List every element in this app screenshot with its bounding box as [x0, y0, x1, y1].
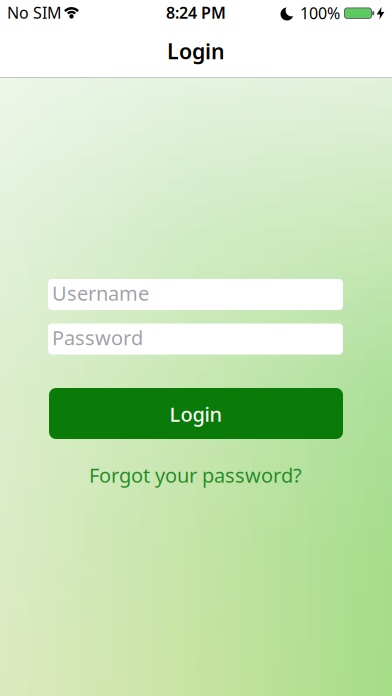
button[interactable]: Forgot your password?: [89, 462, 302, 488]
button[interactable]: Login: [49, 388, 343, 439]
staticText: Password: [52, 324, 143, 351]
staticText: Username: [52, 280, 149, 306]
button[interactable]: Username: [48, 279, 343, 310]
staticText: Login: [169, 401, 222, 427]
staticText: Forgot your password?: [89, 462, 302, 488]
staticText: 8:24 PM: [166, 2, 226, 23]
staticText: No SIM: [7, 2, 62, 23]
staticText: 100%: [300, 2, 340, 24]
staticText: Login: [167, 37, 225, 65]
button[interactable]: Password: [48, 323, 343, 354]
